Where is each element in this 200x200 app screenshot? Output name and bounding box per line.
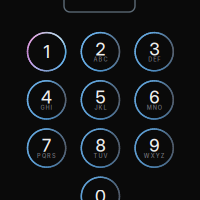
staticText: J K L (94, 104, 106, 111)
button[interactable]: 6 (131, 77, 177, 123)
staticText: 1 (44, 41, 50, 62)
button[interactable]: 7 (24, 125, 70, 171)
staticText: T U V (93, 152, 107, 159)
staticText: 9 (149, 135, 159, 156)
staticText: 8 (95, 135, 105, 156)
staticText: D E F (148, 56, 160, 63)
staticText: G H I (41, 104, 53, 111)
staticText: 2 (95, 39, 105, 60)
button[interactable]: 2 (77, 29, 123, 75)
button[interactable]: 4 (24, 77, 70, 123)
staticText: 3 (149, 39, 159, 60)
button[interactable]: 3 (131, 29, 177, 75)
button[interactable]: 9 (131, 125, 177, 171)
staticText: 4 (41, 87, 52, 108)
staticText: M N O (147, 104, 162, 111)
button[interactable]: 0 (77, 173, 123, 200)
staticText: 5 (95, 87, 105, 108)
button[interactable]: 1 (24, 29, 70, 75)
staticText: W X Y Z (144, 152, 165, 159)
button[interactable]: 5 (77, 77, 123, 123)
staticText: 0 (95, 186, 106, 200)
staticText: P Q R S (37, 152, 56, 159)
button[interactable]: 8 (77, 125, 123, 171)
staticText: 7 (42, 135, 51, 156)
staticText: 6 (149, 87, 159, 108)
staticText: A B C (93, 56, 107, 63)
